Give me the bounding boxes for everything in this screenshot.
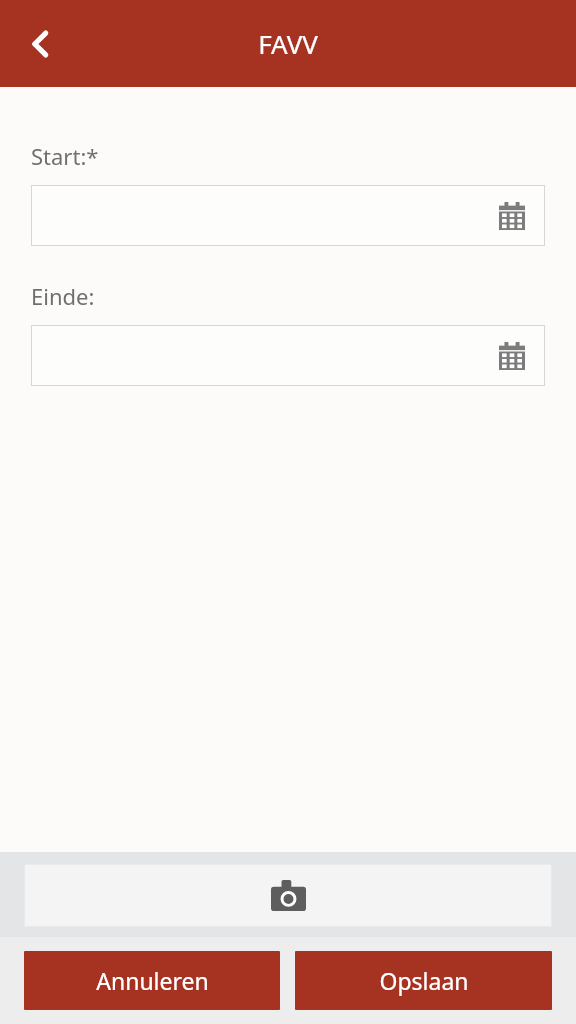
staticText: FAVV — [258, 26, 318, 61]
staticText: Start:* — [31, 141, 99, 171]
button[interactable]: Back — [0, 0, 80, 87]
button[interactable]: Opslaan — [295, 951, 552, 1010]
staticText: Einde: — [31, 281, 95, 311]
button[interactable]: Select date — [31, 185, 545, 246]
button[interactable]: Take photo — [24, 864, 552, 927]
button[interactable]: Select date — [31, 325, 545, 386]
staticText: Opslaan — [379, 965, 469, 996]
button[interactable]: Annuleren — [24, 951, 280, 1010]
staticText: Annuleren — [96, 965, 209, 996]
